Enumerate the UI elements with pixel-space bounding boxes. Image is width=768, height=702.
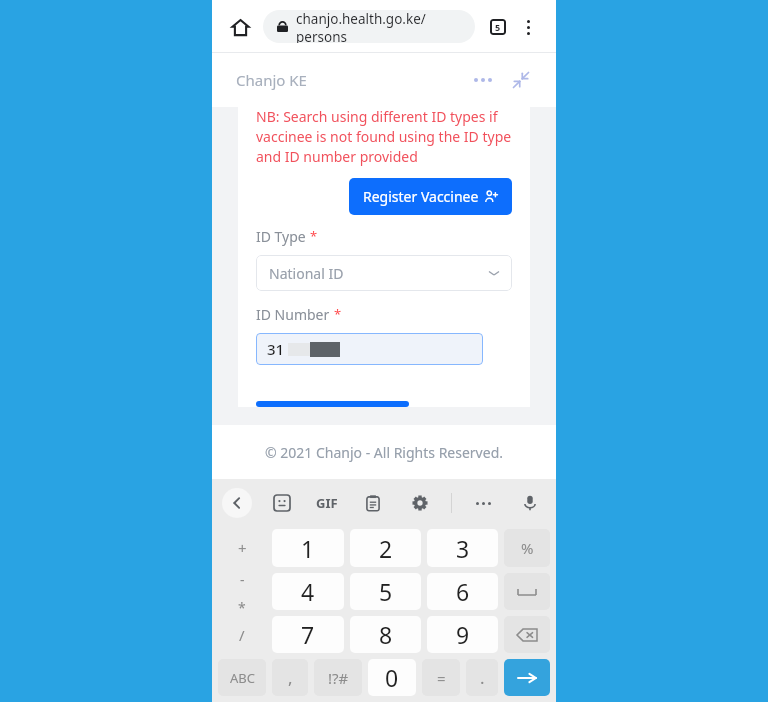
button[interactable]: Register Vaccinee bbox=[349, 178, 512, 215]
button[interactable]: Enter bbox=[504, 659, 550, 696]
staticText: ABC bbox=[230, 669, 255, 687]
button[interactable]: !?# bbox=[314, 659, 362, 696]
staticText: !?# bbox=[328, 668, 349, 688]
button[interactable]: Delete bbox=[504, 616, 550, 653]
button[interactable]: ABC bbox=[218, 659, 266, 696]
button[interactable]: . bbox=[466, 659, 498, 696]
button[interactable]: % bbox=[504, 529, 550, 567]
button[interactable]: = bbox=[422, 659, 460, 696]
staticText: - bbox=[240, 570, 245, 589]
staticText: ID Type bbox=[256, 227, 306, 246]
staticText: + bbox=[238, 538, 247, 558]
button[interactable]: 7 bbox=[272, 616, 344, 653]
button[interactable]: Voice input bbox=[514, 487, 546, 519]
staticText: Chanjo KE bbox=[236, 70, 307, 90]
staticText: 9 bbox=[456, 619, 470, 650]
staticText: 7 bbox=[301, 619, 315, 650]
button[interactable]: Clipboard bbox=[357, 487, 389, 519]
staticText: GIF bbox=[316, 494, 338, 512]
button[interactable]: + bbox=[215, 526, 269, 570]
button[interactable]: 6 bbox=[427, 573, 498, 610]
button[interactable]: 0 bbox=[368, 659, 416, 696]
button[interactable]: 9 bbox=[427, 616, 498, 653]
button[interactable]: Tabs bbox=[483, 12, 513, 42]
staticText: * bbox=[238, 598, 246, 613]
staticText: Register Vaccinee bbox=[363, 187, 479, 206]
button[interactable]: - bbox=[215, 570, 269, 613]
button[interactable]: 5 bbox=[350, 573, 421, 610]
staticText: 5 bbox=[495, 21, 501, 33]
staticText: / bbox=[239, 625, 245, 645]
staticText: % bbox=[521, 538, 534, 558]
button[interactable]: Search Vaccinee bbox=[256, 401, 409, 407]
button[interactable]: 1 bbox=[272, 529, 344, 567]
button[interactable]: / bbox=[215, 613, 269, 656]
button[interactable]: More options bbox=[513, 12, 543, 42]
staticText: . bbox=[480, 666, 485, 689]
button[interactable]: Space bbox=[504, 573, 550, 610]
staticText: NB: Search using different ID types if v… bbox=[256, 107, 512, 166]
staticText: 2 bbox=[379, 533, 393, 564]
staticText: 31 bbox=[267, 339, 285, 359]
staticText: ID Number bbox=[256, 305, 330, 324]
staticText: * bbox=[334, 305, 342, 323]
button[interactable]: Back bbox=[222, 488, 252, 518]
button[interactable]: Home bbox=[225, 12, 255, 42]
button[interactable]: National ID bbox=[256, 255, 512, 291]
staticText: National ID bbox=[269, 264, 344, 283]
button[interactable]: 31 bbox=[256, 333, 483, 365]
staticText: * bbox=[310, 227, 318, 245]
button[interactable]: Collapse bbox=[504, 63, 538, 97]
button[interactable]: 4 bbox=[272, 573, 344, 610]
button[interactable]: GIF bbox=[312, 487, 342, 519]
staticText: chanjo.health.go.ke/persons bbox=[296, 10, 463, 43]
staticText: 5 bbox=[379, 576, 393, 607]
button[interactable]: 3 bbox=[427, 529, 498, 567]
staticText: 4 bbox=[301, 576, 315, 607]
button[interactable]: More bbox=[467, 487, 499, 519]
button[interactable]: Settings bbox=[404, 487, 436, 519]
button[interactable]: 2 bbox=[350, 529, 421, 567]
staticText: 6 bbox=[456, 576, 470, 607]
staticText: , bbox=[288, 666, 293, 689]
staticText: 0 bbox=[385, 662, 399, 693]
staticText: 3 bbox=[456, 533, 470, 564]
staticText: 1 bbox=[301, 533, 315, 564]
staticText: 8 bbox=[379, 619, 393, 650]
staticText: © 2021 Chanjo - All Rights Reserved. bbox=[265, 443, 503, 462]
button[interactable]: chanjo.health.go.ke/persons bbox=[263, 10, 475, 43]
staticText: = bbox=[437, 668, 446, 688]
button[interactable]: 8 bbox=[350, 616, 421, 653]
button[interactable]: More bbox=[466, 63, 500, 97]
button[interactable]: , bbox=[272, 659, 308, 696]
button[interactable]: Stickers bbox=[266, 487, 298, 519]
